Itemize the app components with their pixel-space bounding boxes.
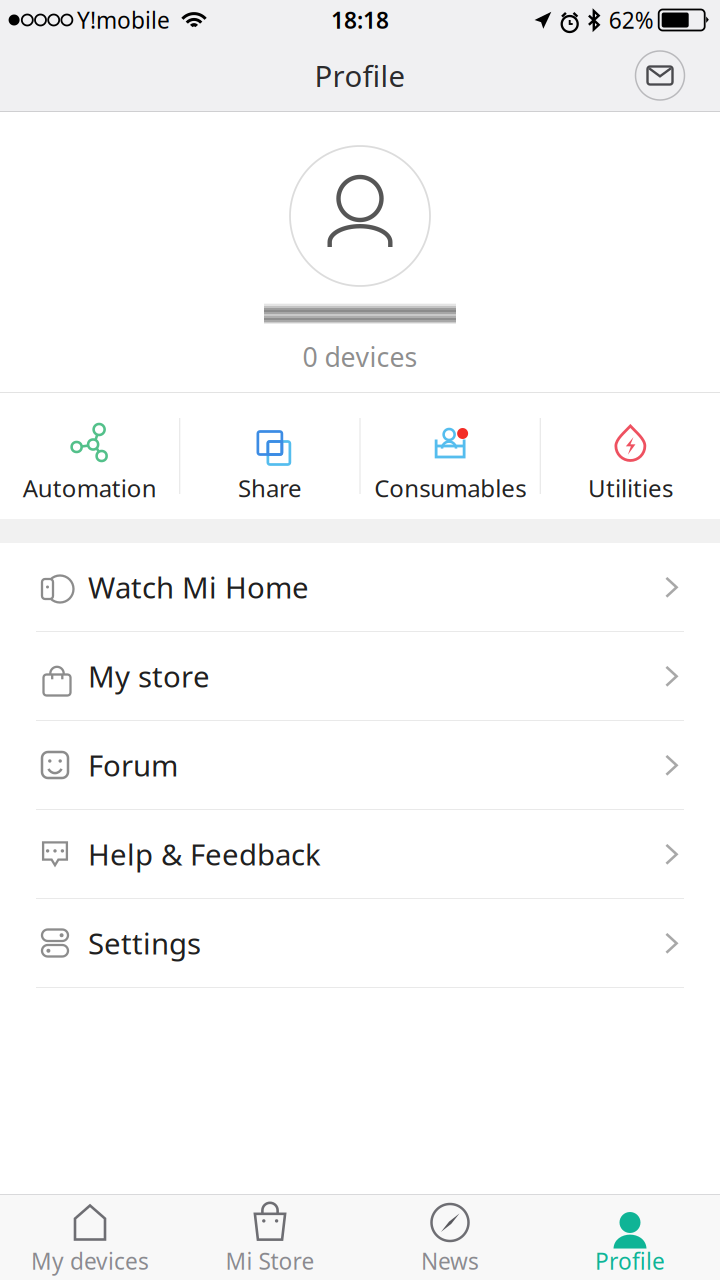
button[interactable]: Consumables bbox=[360, 393, 540, 519]
button[interactable]: Mi Store bbox=[180, 1195, 360, 1280]
button[interactable]: Messages bbox=[625, 40, 695, 111]
button[interactable]: Forum bbox=[0, 721, 720, 809]
staticText: Mi Store bbox=[225, 1246, 314, 1276]
staticText: Automation bbox=[23, 472, 157, 504]
staticText: Forum bbox=[88, 745, 178, 784]
staticText: News bbox=[421, 1246, 479, 1276]
button[interactable]: My devices bbox=[0, 1195, 180, 1280]
button[interactable]: Profile photo bbox=[289, 145, 431, 287]
staticText: My devices bbox=[31, 1246, 149, 1276]
button[interactable]: Utilities bbox=[541, 393, 720, 519]
staticText: Help & Feedback bbox=[88, 834, 321, 873]
staticText: Share bbox=[238, 472, 302, 504]
staticText: Y!mobile bbox=[77, 5, 170, 35]
staticText: 62% bbox=[609, 5, 654, 35]
staticText: 18:18 bbox=[331, 5, 389, 35]
staticText: Profile bbox=[314, 56, 405, 95]
staticText: 0 devices bbox=[302, 339, 417, 374]
staticText: Watch Mi Home bbox=[88, 567, 309, 606]
staticText: My store bbox=[88, 656, 210, 695]
button[interactable]: Help & Feedback bbox=[0, 810, 720, 898]
staticText: Utilities bbox=[588, 472, 673, 504]
staticText: Settings bbox=[88, 923, 201, 962]
button[interactable]: My store bbox=[0, 632, 720, 720]
staticText: Consumables bbox=[374, 472, 526, 504]
staticText: Profile bbox=[595, 1246, 665, 1276]
button[interactable]: Watch Mi Home bbox=[0, 543, 720, 631]
button[interactable]: Profile bbox=[540, 1195, 720, 1280]
button[interactable]: News bbox=[360, 1195, 540, 1280]
button[interactable]: Share bbox=[180, 393, 359, 519]
button[interactable]: Settings bbox=[0, 899, 720, 987]
button[interactable]: Automation bbox=[0, 393, 179, 519]
